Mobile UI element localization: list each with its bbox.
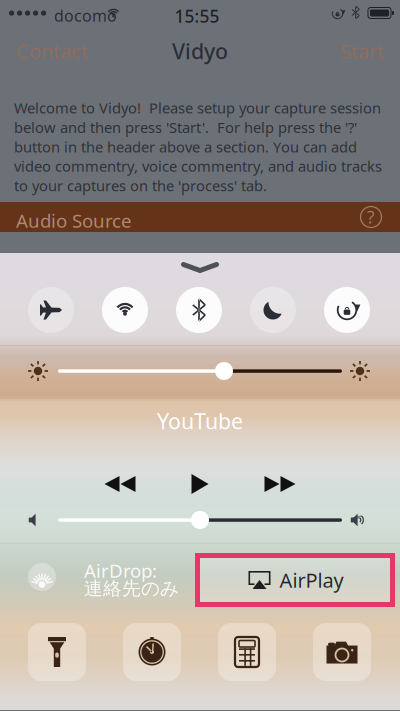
button[interactable]: Contact (0, 38, 80, 64)
button[interactable]: Play (0, 403, 34, 437)
button[interactable]: Shortcut (0, 619, 58, 677)
button[interactable]: Start (0, 38, 80, 64)
staticText: Start (340, 38, 384, 64)
staticText: Vidyo (172, 37, 228, 65)
staticText: 連絡先のみ (84, 577, 179, 600)
button[interactable]: Help (0, 202, 30, 232)
button[interactable]: Rewind (0, 403, 44, 437)
button[interactable]: Toggle (0, 284, 46, 330)
button[interactable]: AirDrop: (0, 547, 196, 607)
staticText: 15:55 (174, 4, 219, 27)
button[interactable]: Toggle (0, 284, 46, 330)
button[interactable]: Toggle (0, 284, 46, 330)
staticText: AirDrop: (84, 558, 157, 583)
staticText: docomo (54, 5, 117, 26)
button[interactable]: Shortcut (0, 619, 58, 677)
button[interactable]: Toggle (0, 284, 46, 330)
staticText: YouTube (157, 407, 243, 435)
staticText: Welcome to Vidyo! Please setup your capt… (14, 98, 382, 195)
button[interactable]: Fast forward (0, 403, 44, 437)
button[interactable]: Shortcut (0, 619, 58, 677)
staticText: Audio Source (16, 208, 132, 233)
staticText: Contact (16, 38, 88, 64)
staticText: AirPlay (279, 567, 343, 593)
button[interactable]: Shortcut (0, 619, 58, 677)
staticText: ? (367, 205, 375, 228)
button[interactable]: Toggle (0, 284, 46, 330)
button[interactable]: AirPlay (0, 547, 196, 607)
